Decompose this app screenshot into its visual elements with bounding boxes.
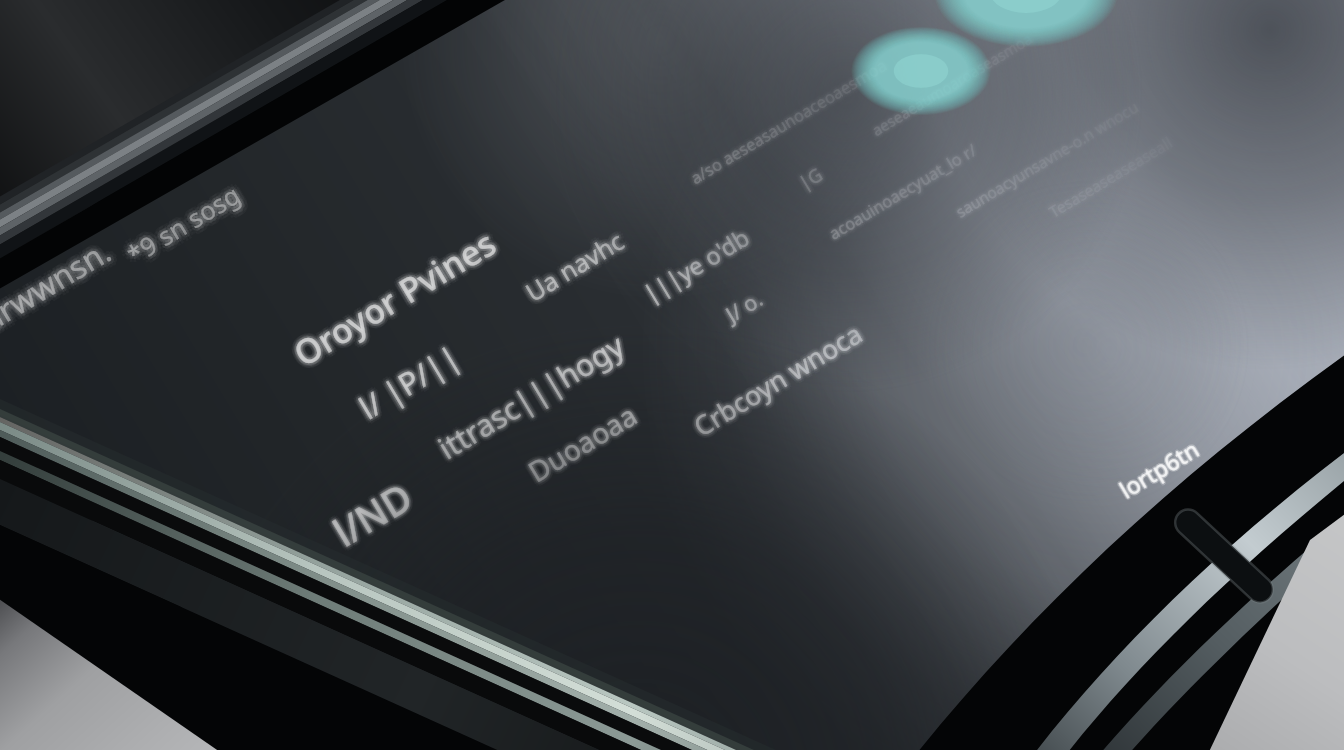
button[interactable]: lortp6tn label <box>1090 440 1230 510</box>
button[interactable]: Side button <box>1170 500 1280 620</box>
button[interactable]: l/ND list item <box>250 430 670 550</box>
button[interactable]: Oroyor Pvines header <box>240 300 560 420</box>
button[interactable] <box>120 60 1220 660</box>
